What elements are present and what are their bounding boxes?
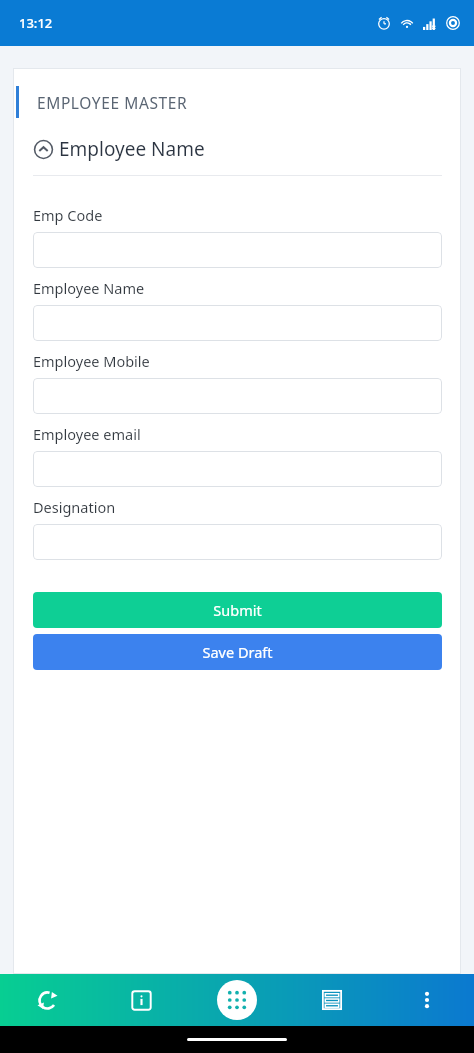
button[interactable]: Information	[94, 974, 189, 1026]
button[interactable]: List	[284, 974, 379, 1026]
button[interactable]: EMPLOYEE MASTER	[13, 86, 461, 118]
button[interactable]	[33, 524, 442, 560]
staticText: Employee email	[33, 424, 141, 444]
button[interactable]	[33, 451, 442, 487]
button[interactable]	[33, 378, 442, 414]
button[interactable]: Sync	[0, 974, 94, 1026]
staticText: Employee Mobile	[33, 351, 150, 371]
staticText: Designation	[33, 497, 116, 517]
button[interactable]: More options	[379, 974, 474, 1026]
staticText: 13:12	[19, 14, 53, 32]
staticText: EMPLOYEE MASTER	[37, 92, 188, 113]
staticText: Submit	[213, 600, 262, 620]
button[interactable]: Apps	[189, 974, 284, 1026]
button[interactable]: Submit	[33, 592, 442, 628]
button[interactable]: Employee Name	[33, 136, 441, 162]
staticText: Employee Name	[33, 278, 145, 298]
staticText: Employee Name	[59, 136, 205, 162]
staticText: Save Draft	[202, 642, 273, 662]
button[interactable]	[33, 305, 442, 341]
button[interactable]: Save Draft	[33, 634, 442, 670]
button[interactable]	[33, 232, 442, 268]
staticText: Emp Code	[33, 205, 103, 225]
